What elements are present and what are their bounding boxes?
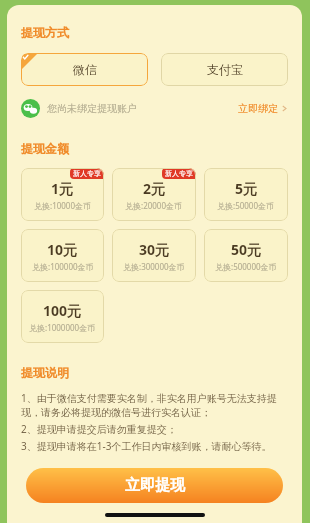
button[interactable]: 微信 <box>21 53 148 86</box>
staticText: 100元 <box>43 301 82 320</box>
staticText: 支付宝 <box>207 62 243 77</box>
button[interactable]: 立即提现 <box>26 468 283 503</box>
staticText: 10元 <box>47 240 78 259</box>
staticText: 50元 <box>231 240 262 259</box>
staticText: 立即绑定 <box>238 102 278 115</box>
button[interactable]: 10元 <box>21 229 104 282</box>
staticText: 立即提现 <box>125 476 185 495</box>
button[interactable]: 100元 <box>21 290 104 343</box>
staticText: 兑换:1000000金币 <box>29 322 96 333</box>
staticText: 兑换:50000金币 <box>217 200 275 211</box>
staticText: 提现金额 <box>21 141 69 156</box>
staticText: 兑换:10000金币 <box>34 200 92 211</box>
staticText: 微信 <box>73 62 97 77</box>
staticText: 兑换:20000金币 <box>125 200 183 211</box>
button[interactable]: 支付宝 <box>161 53 288 86</box>
button[interactable]: 2元 <box>112 168 196 221</box>
staticText: 新人专享 <box>165 169 193 178</box>
staticText: 提现方式 <box>21 25 69 40</box>
staticText: 2元 <box>143 179 166 198</box>
button[interactable]: 立即绑定 <box>238 102 288 115</box>
staticText: 1元 <box>51 179 74 198</box>
button[interactable]: 1元 <box>21 168 104 221</box>
staticText: 3、提现申请将在1-3个工作日内审核到账，请耐心等待。 <box>21 439 272 453</box>
staticText: 30元 <box>139 240 170 259</box>
staticText: 2、提现申请提交后请勿重复提交； <box>21 422 177 436</box>
button[interactable]: 30元 <box>112 229 196 282</box>
button[interactable]: 5元 <box>204 168 288 221</box>
staticText: 5元 <box>235 179 258 198</box>
staticText: 兑换:500000金币 <box>215 261 277 272</box>
staticText: 新人专享 <box>73 169 101 178</box>
button[interactable]: 50元 <box>204 229 288 282</box>
staticText: 兑换:300000金币 <box>123 261 185 272</box>
staticText: 兑换:100000金币 <box>32 261 94 272</box>
staticText: 1、由于微信支付需要实名制，非实名用户账号无法支持提现，请务必将提现的微信号进行… <box>21 391 288 419</box>
staticText: 您尚未绑定提现账户 <box>47 102 137 115</box>
staticText: 提现说明 <box>21 365 69 380</box>
